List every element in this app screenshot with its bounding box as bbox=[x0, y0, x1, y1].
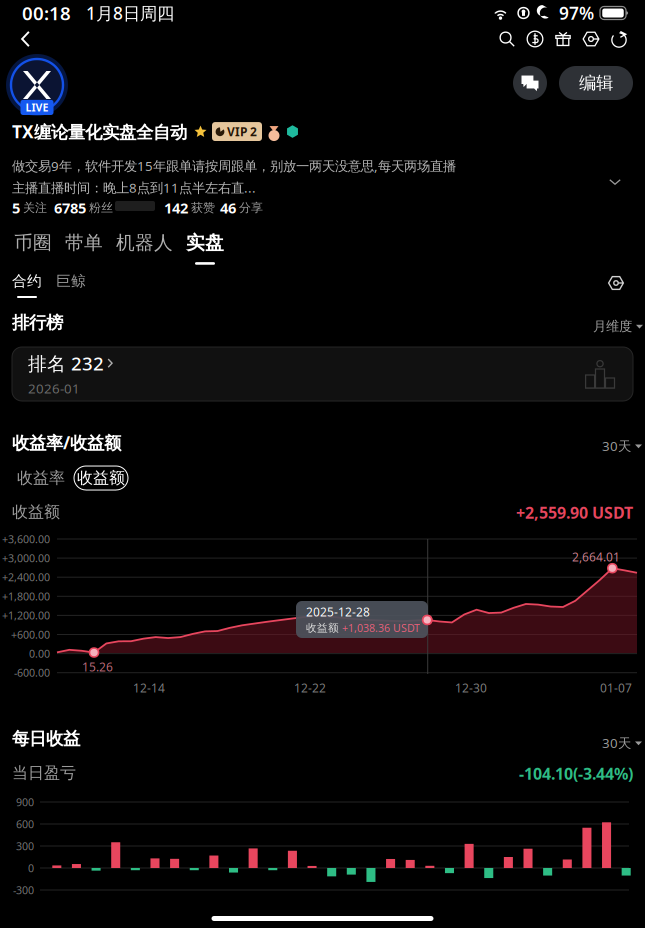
staticText: 5 bbox=[12, 198, 20, 217]
staticText: +2,400.00 bbox=[2, 570, 50, 584]
staticText: 获赞 bbox=[191, 200, 215, 215]
button[interactable]: Expand bio bbox=[603, 170, 627, 194]
staticText: 币圈 bbox=[14, 231, 52, 254]
staticText: 月维度 bbox=[593, 318, 632, 334]
staticText: 900 bbox=[16, 795, 34, 809]
staticText: 做交易9年，软件开发15年跟单请按周跟单，别放一两天没意思,每天两场直播 bbox=[12, 157, 456, 175]
staticText: 收益额 bbox=[77, 468, 125, 488]
staticText: 收益率/收益额 bbox=[12, 431, 121, 454]
button[interactable]: 收益率 bbox=[14, 466, 68, 490]
staticText: 2026-01 bbox=[28, 379, 80, 397]
staticText: 巨鲸 bbox=[56, 272, 86, 290]
staticText: 1月8日周四 bbox=[71, 1, 174, 24]
button[interactable]: 30天 bbox=[598, 432, 645, 460]
staticText: 2,664.01 bbox=[572, 549, 620, 565]
staticText: 46 bbox=[220, 198, 236, 217]
staticText: 30天 bbox=[602, 437, 631, 455]
button[interactable]: Chart settings bbox=[603, 270, 629, 296]
staticText: -600.00 bbox=[14, 666, 50, 680]
staticText: 关注 bbox=[23, 200, 47, 215]
staticText: 0 bbox=[28, 861, 34, 875]
staticText: 01-07 bbox=[600, 680, 632, 696]
staticText: 合约 bbox=[12, 272, 42, 290]
staticText: 12-30 bbox=[455, 680, 487, 696]
staticText: +1,038.36 USDT bbox=[342, 621, 420, 635]
button[interactable]: Gifts bbox=[549, 23, 577, 55]
staticText: +3,000.00 bbox=[2, 551, 50, 565]
staticText: 收益额 bbox=[306, 621, 339, 634]
button[interactable]: 实盘 bbox=[184, 233, 226, 263]
staticText: 15.26 bbox=[82, 659, 113, 675]
staticText: 2025-12-28 bbox=[306, 604, 370, 620]
button[interactable]: 巨鲸 bbox=[55, 272, 87, 298]
staticText: -300 bbox=[13, 883, 34, 897]
staticText: 142 bbox=[164, 198, 188, 217]
staticText: 当日盈亏 bbox=[12, 763, 76, 783]
staticText: 排名 232 bbox=[28, 351, 104, 376]
staticText: 300 bbox=[16, 839, 34, 853]
staticText: 12-22 bbox=[294, 680, 326, 696]
button[interactable]: 30天 bbox=[598, 729, 645, 757]
staticText: 机器人 bbox=[116, 231, 173, 254]
staticText: 00:18 bbox=[22, 1, 71, 25]
staticText: 带单 bbox=[65, 231, 103, 254]
staticText: +600.00 bbox=[11, 627, 50, 642]
staticText: 收益额 bbox=[12, 502, 60, 522]
button[interactable]: 机器人 bbox=[114, 233, 175, 263]
button[interactable]: 合约 bbox=[11, 272, 43, 298]
button[interactable]: 带单 bbox=[63, 233, 105, 263]
staticText: 600 bbox=[16, 817, 34, 831]
button[interactable]: Share bbox=[605, 23, 633, 55]
staticText: 粉丝 bbox=[89, 200, 113, 215]
staticText: -104.10(-3.44%) bbox=[519, 763, 633, 784]
staticText: VIP 2 bbox=[227, 124, 257, 139]
button[interactable]: Messages bbox=[513, 66, 547, 100]
staticText: 收益率 bbox=[17, 468, 65, 488]
staticText: LIVE bbox=[25, 100, 48, 114]
staticText: +1,200.00 bbox=[2, 608, 50, 622]
staticText: 主播直播时间：晚上8点到11点半左右直... bbox=[12, 179, 256, 196]
staticText: +2,559.90 USDT bbox=[516, 502, 633, 523]
button[interactable]: Options bbox=[577, 23, 605, 55]
staticText: 30天 bbox=[602, 734, 631, 752]
staticText: +3,600.00 bbox=[2, 532, 50, 546]
button[interactable]: Back bbox=[6, 20, 46, 58]
button[interactable]: Search bbox=[493, 23, 521, 55]
staticText: 0.00 bbox=[29, 646, 50, 661]
staticText: TX缠论量化实盘全自动 bbox=[12, 120, 187, 143]
staticText: +1,800.00 bbox=[2, 589, 50, 603]
staticText: 实盘 bbox=[186, 231, 224, 254]
button[interactable]: 编辑 bbox=[559, 66, 633, 100]
button[interactable]: 排名 232 bbox=[12, 347, 633, 401]
button[interactable]: 收益额 bbox=[74, 466, 128, 490]
staticText: 6785 bbox=[54, 198, 86, 217]
staticText: 97% bbox=[559, 1, 594, 24]
staticText: 每日收益 bbox=[12, 728, 80, 749]
staticText: 排行榜 bbox=[12, 312, 63, 333]
staticText: 分享 bbox=[239, 200, 263, 215]
staticText: 编辑 bbox=[579, 72, 613, 94]
button[interactable]: Balance bbox=[521, 23, 549, 55]
staticText: 12-14 bbox=[133, 680, 165, 696]
button[interactable]: 月维度 bbox=[589, 313, 645, 339]
button[interactable]: 币圈 bbox=[12, 233, 54, 263]
